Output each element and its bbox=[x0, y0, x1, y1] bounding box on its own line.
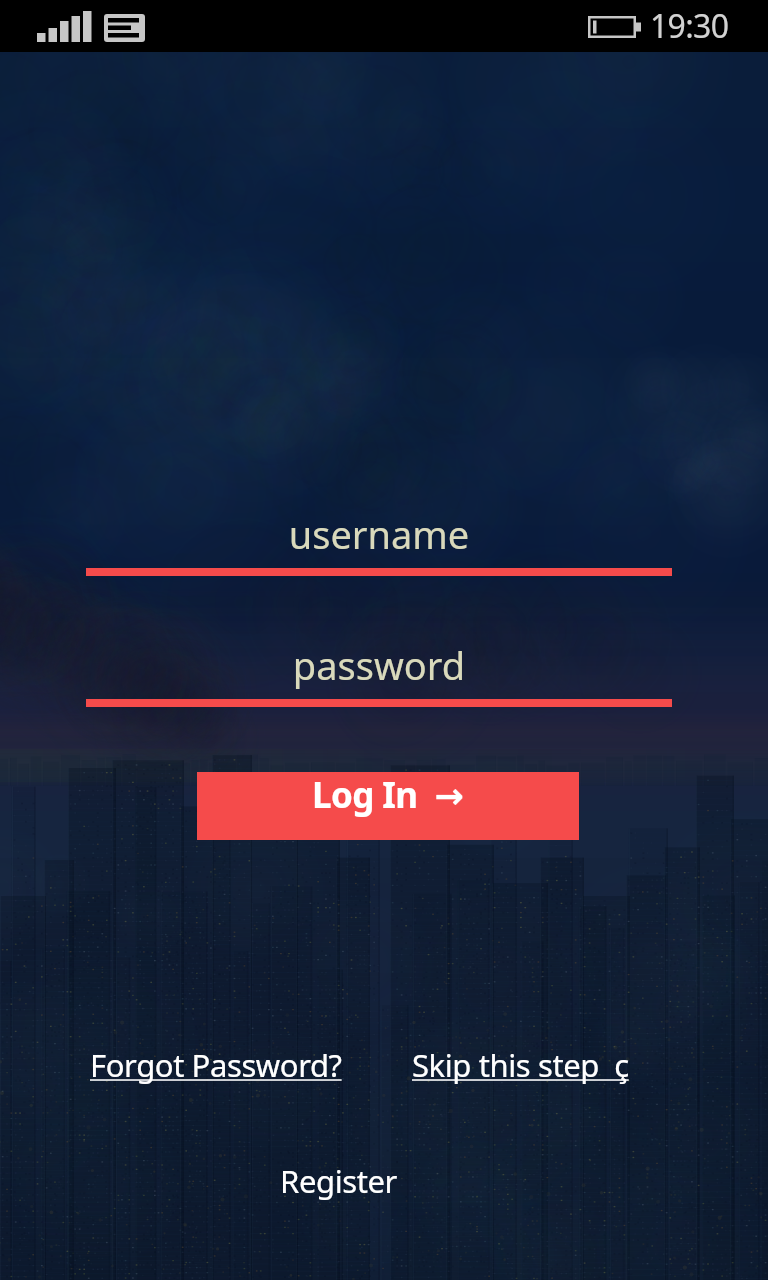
staticText: username bbox=[86, 508, 672, 560]
button[interactable]: Register bbox=[280, 1160, 397, 1202]
button[interactable]: Skip this step ç bbox=[412, 1044, 629, 1086]
staticText: 19:30 bbox=[650, 4, 729, 48]
button[interactable]: Forgot Password? bbox=[90, 1044, 342, 1086]
staticText: Log In → bbox=[312, 771, 464, 819]
staticText: password bbox=[86, 639, 672, 691]
button[interactable]: Log In → bbox=[197, 772, 579, 840]
staticText: Forgot Password? bbox=[90, 1044, 342, 1086]
staticText: Skip this step ç bbox=[412, 1044, 629, 1086]
staticText: Register bbox=[280, 1160, 397, 1202]
